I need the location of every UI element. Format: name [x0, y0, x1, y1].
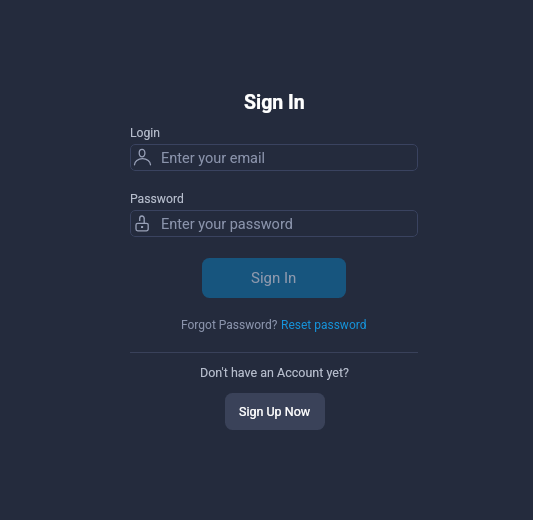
staticText: Password — [130, 192, 184, 206]
staticText: Sign In — [244, 91, 305, 114]
staticText: Login — [130, 126, 161, 140]
button[interactable]: User — [130, 144, 418, 171]
button[interactable]: Password — [130, 210, 418, 237]
staticText: Enter your email — [161, 150, 266, 167]
staticText: Forgot Password? — [181, 318, 281, 332]
button[interactable]: Sign Up Now — [225, 393, 325, 430]
staticText: Sign In — [251, 269, 297, 287]
button[interactable]: Sign In — [202, 258, 346, 298]
other: User — [134, 147, 151, 168]
staticText: Don't have an Account yet? — [200, 365, 349, 380]
other: Password — [134, 213, 151, 234]
button[interactable]: Reset password — [281, 318, 367, 332]
staticText: Sign Up Now — [239, 404, 311, 419]
staticText: Enter your password — [161, 216, 293, 233]
